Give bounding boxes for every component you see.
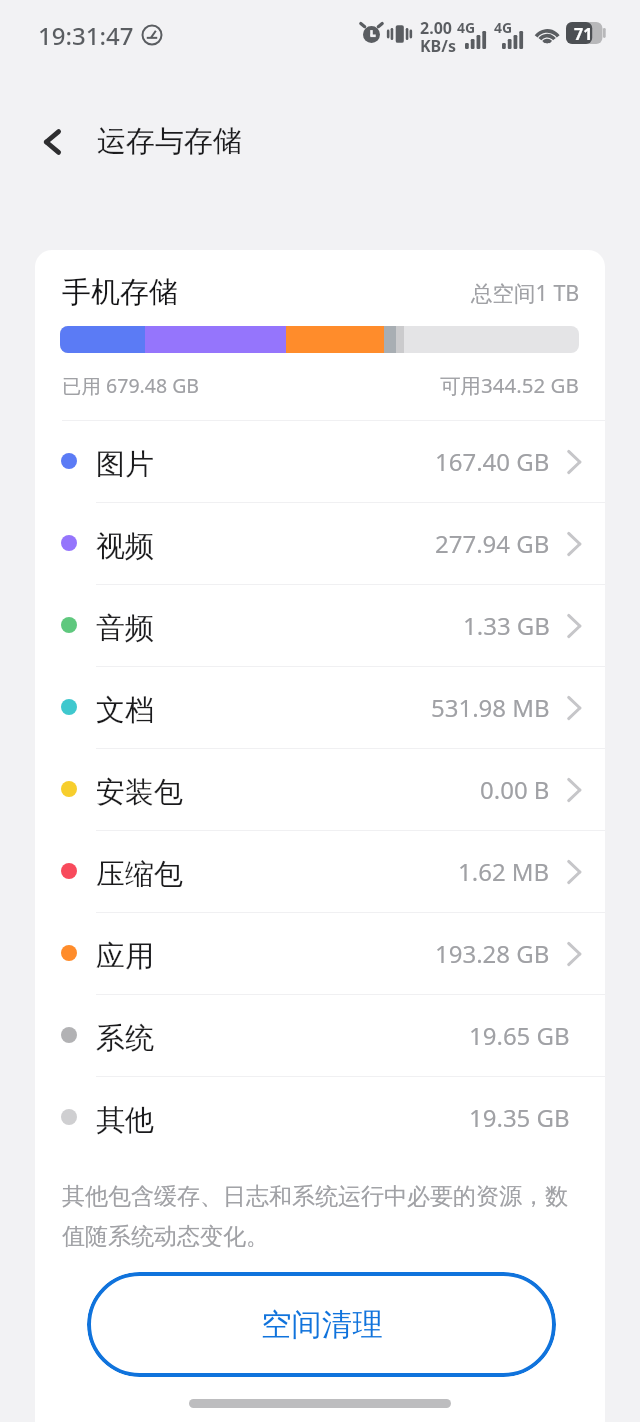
staticText: 可用344.52 GB (440, 371, 579, 399)
staticText: 空间清理 (261, 1306, 383, 1344)
button[interactable]: 系统 (35, 995, 605, 1076)
staticText: 1.33 GB (463, 609, 550, 642)
staticText: KB/s (420, 35, 456, 57)
staticText: 167.40 GB (435, 445, 550, 478)
staticText: 安装包 (96, 774, 183, 811)
button[interactable]: 安装包 (35, 749, 605, 830)
button[interactable]: Back (30, 119, 76, 165)
staticText: 系统 (96, 1020, 154, 1057)
button[interactable]: 图片 (35, 421, 605, 502)
staticText: 19.65 GB (469, 1019, 570, 1052)
staticText: 1.62 MB (458, 855, 550, 888)
button[interactable]: 压缩包 (35, 831, 605, 912)
staticText: 19.35 GB (469, 1101, 570, 1134)
staticText: 277.94 GB (435, 527, 550, 560)
staticText: 4G (494, 18, 513, 37)
staticText: 193.28 GB (435, 937, 550, 970)
staticText: 4G (457, 18, 476, 37)
staticText: 531.98 MB (431, 691, 550, 724)
staticText: 手机存储 (62, 274, 178, 311)
staticText: 71 (574, 23, 593, 45)
staticText: 运存与存储 (97, 123, 242, 160)
staticText: 音频 (96, 610, 154, 647)
staticText: 0.00 B (480, 773, 550, 806)
staticText: 2.00 (420, 17, 452, 39)
staticText: 其他包含缓存、日志和系统运行中必要的资源，数值随系统动态变化。 (62, 1182, 577, 1251)
staticText: 视频 (96, 528, 154, 565)
button[interactable]: 音频 (35, 585, 605, 666)
staticText: 总空间1 TB (471, 278, 580, 307)
button[interactable]: 其他 (35, 1077, 605, 1158)
staticText: 19:31:47 (38, 19, 134, 52)
button[interactable]: 文档 (35, 667, 605, 748)
staticText: 文档 (96, 692, 154, 729)
staticText: 其他 (96, 1102, 154, 1139)
staticText: 已用 679.48 GB (62, 372, 200, 399)
button[interactable]: 应用 (35, 913, 605, 994)
staticText: 应用 (96, 938, 154, 975)
staticText: 图片 (96, 446, 154, 483)
button[interactable]: 空间清理 (87, 1272, 556, 1377)
button[interactable]: 视频 (35, 503, 605, 584)
staticText: 压缩包 (96, 856, 183, 893)
